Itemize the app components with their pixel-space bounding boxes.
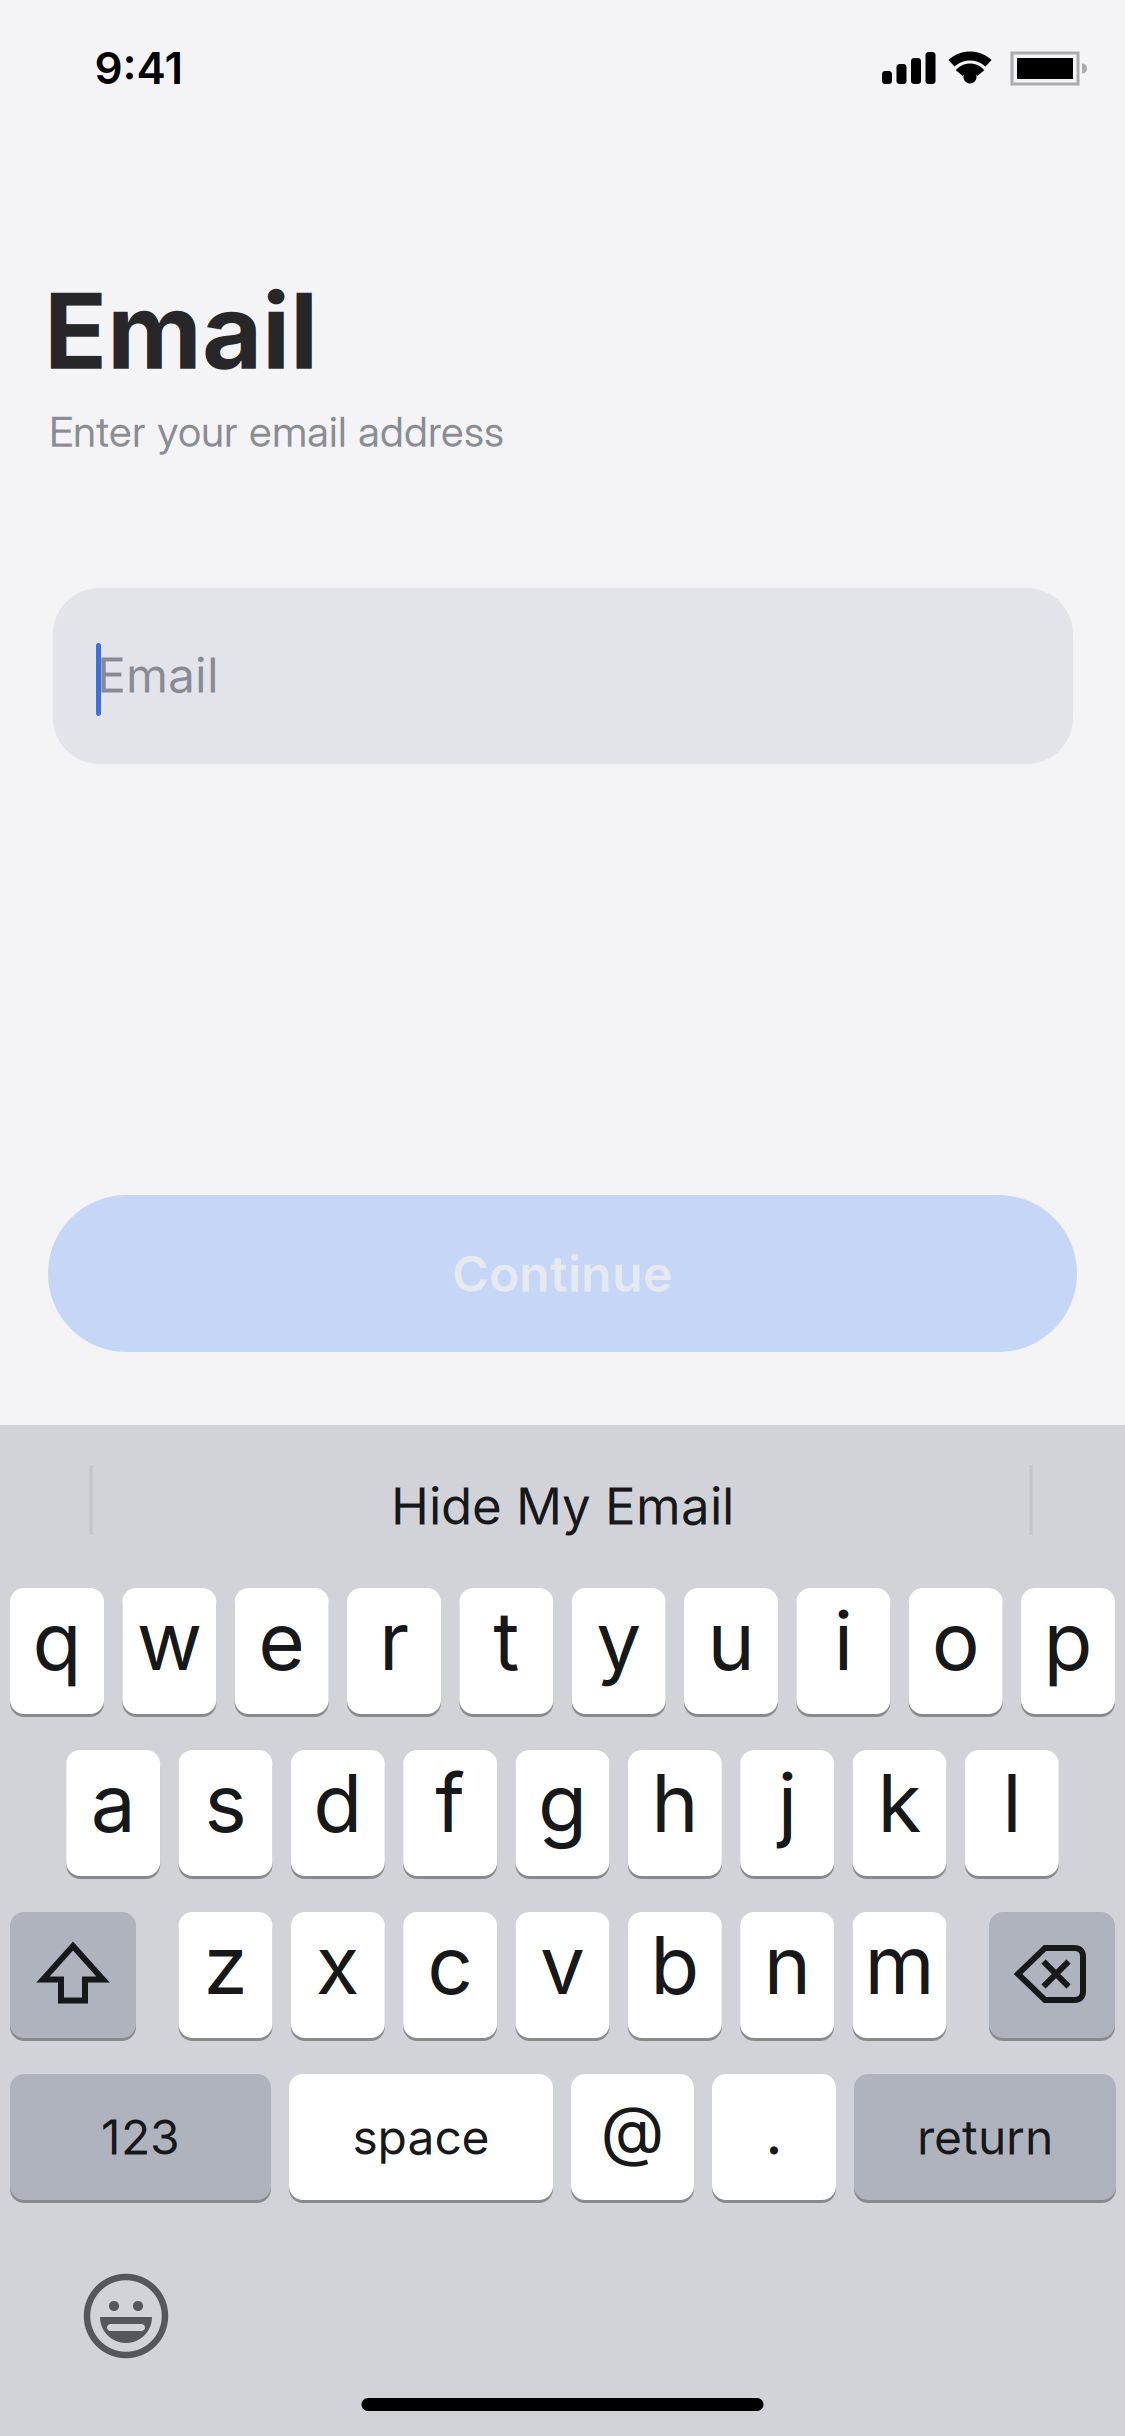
- staticText: w: [137, 1593, 202, 1689]
- staticText: l: [1002, 1755, 1021, 1851]
- staticText: space: [352, 2108, 489, 2166]
- staticText: e: [258, 1593, 305, 1689]
- staticText: r: [379, 1593, 409, 1689]
- staticText: m: [864, 1917, 934, 2013]
- staticText: @: [600, 2090, 664, 2170]
- staticText: p: [1043, 1593, 1092, 1689]
- staticText: .: [765, 2094, 783, 2169]
- staticText: j: [778, 1755, 797, 1851]
- staticText: return: [917, 2108, 1053, 2166]
- staticText: f: [435, 1755, 465, 1851]
- staticText: o: [932, 1593, 980, 1689]
- staticText: v: [540, 1917, 585, 2013]
- staticText: g: [538, 1755, 587, 1851]
- staticText: u: [707, 1593, 754, 1689]
- staticText: y: [596, 1593, 641, 1689]
- staticText: k: [877, 1755, 921, 1851]
- staticText: a: [91, 1755, 136, 1851]
- staticText: t: [493, 1593, 519, 1689]
- staticText: b: [650, 1917, 699, 2013]
- staticText: d: [313, 1755, 362, 1851]
- staticText: n: [764, 1917, 811, 2013]
- staticText: Hide My Email: [391, 1475, 734, 1537]
- staticText: c: [427, 1917, 473, 2013]
- staticText: Email: [97, 646, 219, 704]
- staticText: h: [651, 1755, 698, 1851]
- staticText: i: [834, 1593, 853, 1689]
- staticText: x: [316, 1917, 360, 2013]
- staticText: 123: [101, 2108, 180, 2166]
- staticText: q: [32, 1593, 81, 1689]
- staticText: Continue: [452, 1243, 673, 1304]
- staticText: s: [204, 1755, 246, 1851]
- staticText: z: [203, 1917, 247, 2013]
- staticText: Enter your email address: [49, 406, 504, 457]
- staticText: Email: [44, 268, 318, 394]
- staticText: 9:41: [94, 41, 183, 95]
